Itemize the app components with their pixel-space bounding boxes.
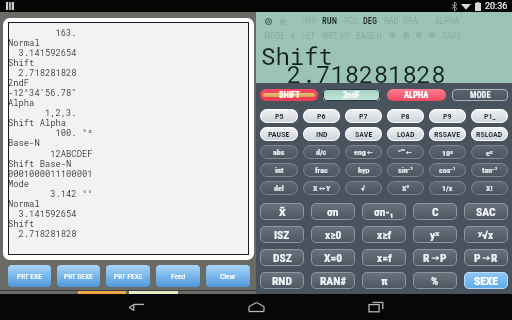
button[interactable]: C [413,203,457,220]
button[interactable]: RAN# [311,272,355,289]
staticText: WRT [322,31,338,41]
staticText: ISZ [274,228,290,241]
button[interactable]: % [413,272,457,289]
button[interactable]: hyp [345,163,382,177]
staticText: X=0 [324,251,343,264]
button[interactable]: 10ˣ [429,145,466,159]
button[interactable]: DSZ [260,249,304,266]
button[interactable]: ʸ√x [464,226,508,243]
button[interactable]: LOAD [387,127,424,141]
staticText: GRA [403,16,418,26]
button[interactable]: σn [311,203,355,220]
staticText: Base-N [8,137,40,149]
button[interactable]: P8 [387,109,424,123]
staticText: 2.718281828 [287,58,446,90]
button[interactable]: PAUSE [260,127,298,141]
staticText: RSLOAD [476,130,503,139]
button[interactable]: del [260,181,298,195]
button[interactable]: P5 [260,109,298,123]
button[interactable]: MODE [452,89,508,101]
staticText: Alpha [8,97,35,109]
button[interactable]: σn-₁ [362,203,406,220]
button[interactable]: ALPHA [387,89,446,101]
staticText: Shift [8,218,35,230]
button[interactable]: 1/x [429,181,466,195]
staticText: MODE [264,31,285,41]
button[interactable]: x̄ [260,203,304,220]
staticText: 2ndF [343,90,360,100]
button[interactable]: sin⁻¹ [387,163,424,177]
staticText: CAPS [442,31,462,41]
staticText: Normal [8,37,40,49]
staticText: MODE [470,90,491,100]
button[interactable]: Back [76,294,196,320]
button[interactable]: SAVE [345,127,382,141]
staticText: P [440,251,447,264]
button[interactable]: yˣ [413,226,457,243]
staticText: σn [327,205,339,218]
button[interactable]: X! [471,181,508,195]
button[interactable]: SAC [464,203,508,220]
button[interactable]: x=f [362,249,406,266]
button[interactable]: SEXE [464,272,508,289]
button[interactable]: abs [260,145,298,159]
button[interactable]: Feed [156,265,200,287]
button[interactable]: P1_ [471,109,508,123]
button[interactable]: RSSAVE [429,127,466,141]
staticText: P8 [401,112,410,121]
staticText: x=f [377,251,392,264]
staticText: tan⁻¹ [482,166,498,175]
button[interactable]: X² [387,181,424,195]
staticText: P5 [275,112,284,121]
button[interactable]: x≥f [362,226,406,243]
staticText: PCL [344,16,358,26]
button[interactable]: SHIFT [260,89,318,101]
button[interactable]: PRT SEXE [57,265,100,287]
button[interactable]: Recent apps [316,294,436,320]
staticText: eˣ [486,147,493,158]
button[interactable]: x≥0 [311,226,355,243]
staticText: DSZ [273,251,292,264]
button[interactable]: d/c [303,145,340,159]
staticText: sin⁻¹ [398,166,413,175]
button[interactable]: frac [303,163,340,177]
button[interactable]: √ [345,181,382,195]
button[interactable]: P [464,249,508,266]
button[interactable]: X [303,181,340,195]
button[interactable]: eng [345,145,382,159]
button[interactable]: RND [260,272,304,289]
staticText: DEG [363,16,378,26]
button[interactable]: PRT EXE [8,265,51,287]
button[interactable]: RSLOAD [471,127,508,141]
button[interactable]: ISZ [260,226,304,243]
staticText: SAC [476,205,496,218]
staticText: Shift Alpha [8,117,67,129]
staticText: cos⁻¹ [439,166,456,175]
button[interactable]: 2ndF [323,89,380,101]
staticText: R [491,251,498,264]
button[interactable]: tan⁻¹ [471,163,508,177]
button[interactable]: R [413,249,457,266]
button[interactable]: PRT FEXE [106,265,150,287]
button[interactable]: eˣ [471,145,508,159]
staticText: Shift Base-N [8,158,72,170]
staticText: C [432,205,439,218]
staticText: 1,2,3. [8,107,77,119]
button[interactable]: Clear [206,265,250,287]
button[interactable]: P9 [429,109,466,123]
button[interactable]: cos⁻¹ [429,163,466,177]
staticText: 3.141592654 [8,208,77,220]
button[interactable]: Home [196,294,316,320]
staticText: 0001000011100001 [8,168,93,180]
staticText: P1_ [484,112,496,121]
staticText: X [313,184,318,193]
button[interactable]: X=0 [311,249,355,266]
button[interactable]: P6 [303,109,340,123]
staticText: del [274,184,284,193]
button[interactable]: °′″ [387,145,424,159]
button[interactable]: IND [303,127,340,141]
button[interactable]: P7 [345,109,382,123]
staticText: x̄ [279,204,286,220]
button[interactable]: int [260,163,298,177]
button[interactable]: π [362,272,406,289]
